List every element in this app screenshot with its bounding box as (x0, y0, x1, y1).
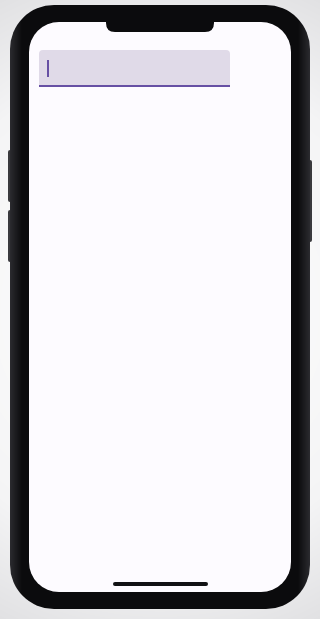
button[interactable]: Text field (39, 50, 230, 87)
